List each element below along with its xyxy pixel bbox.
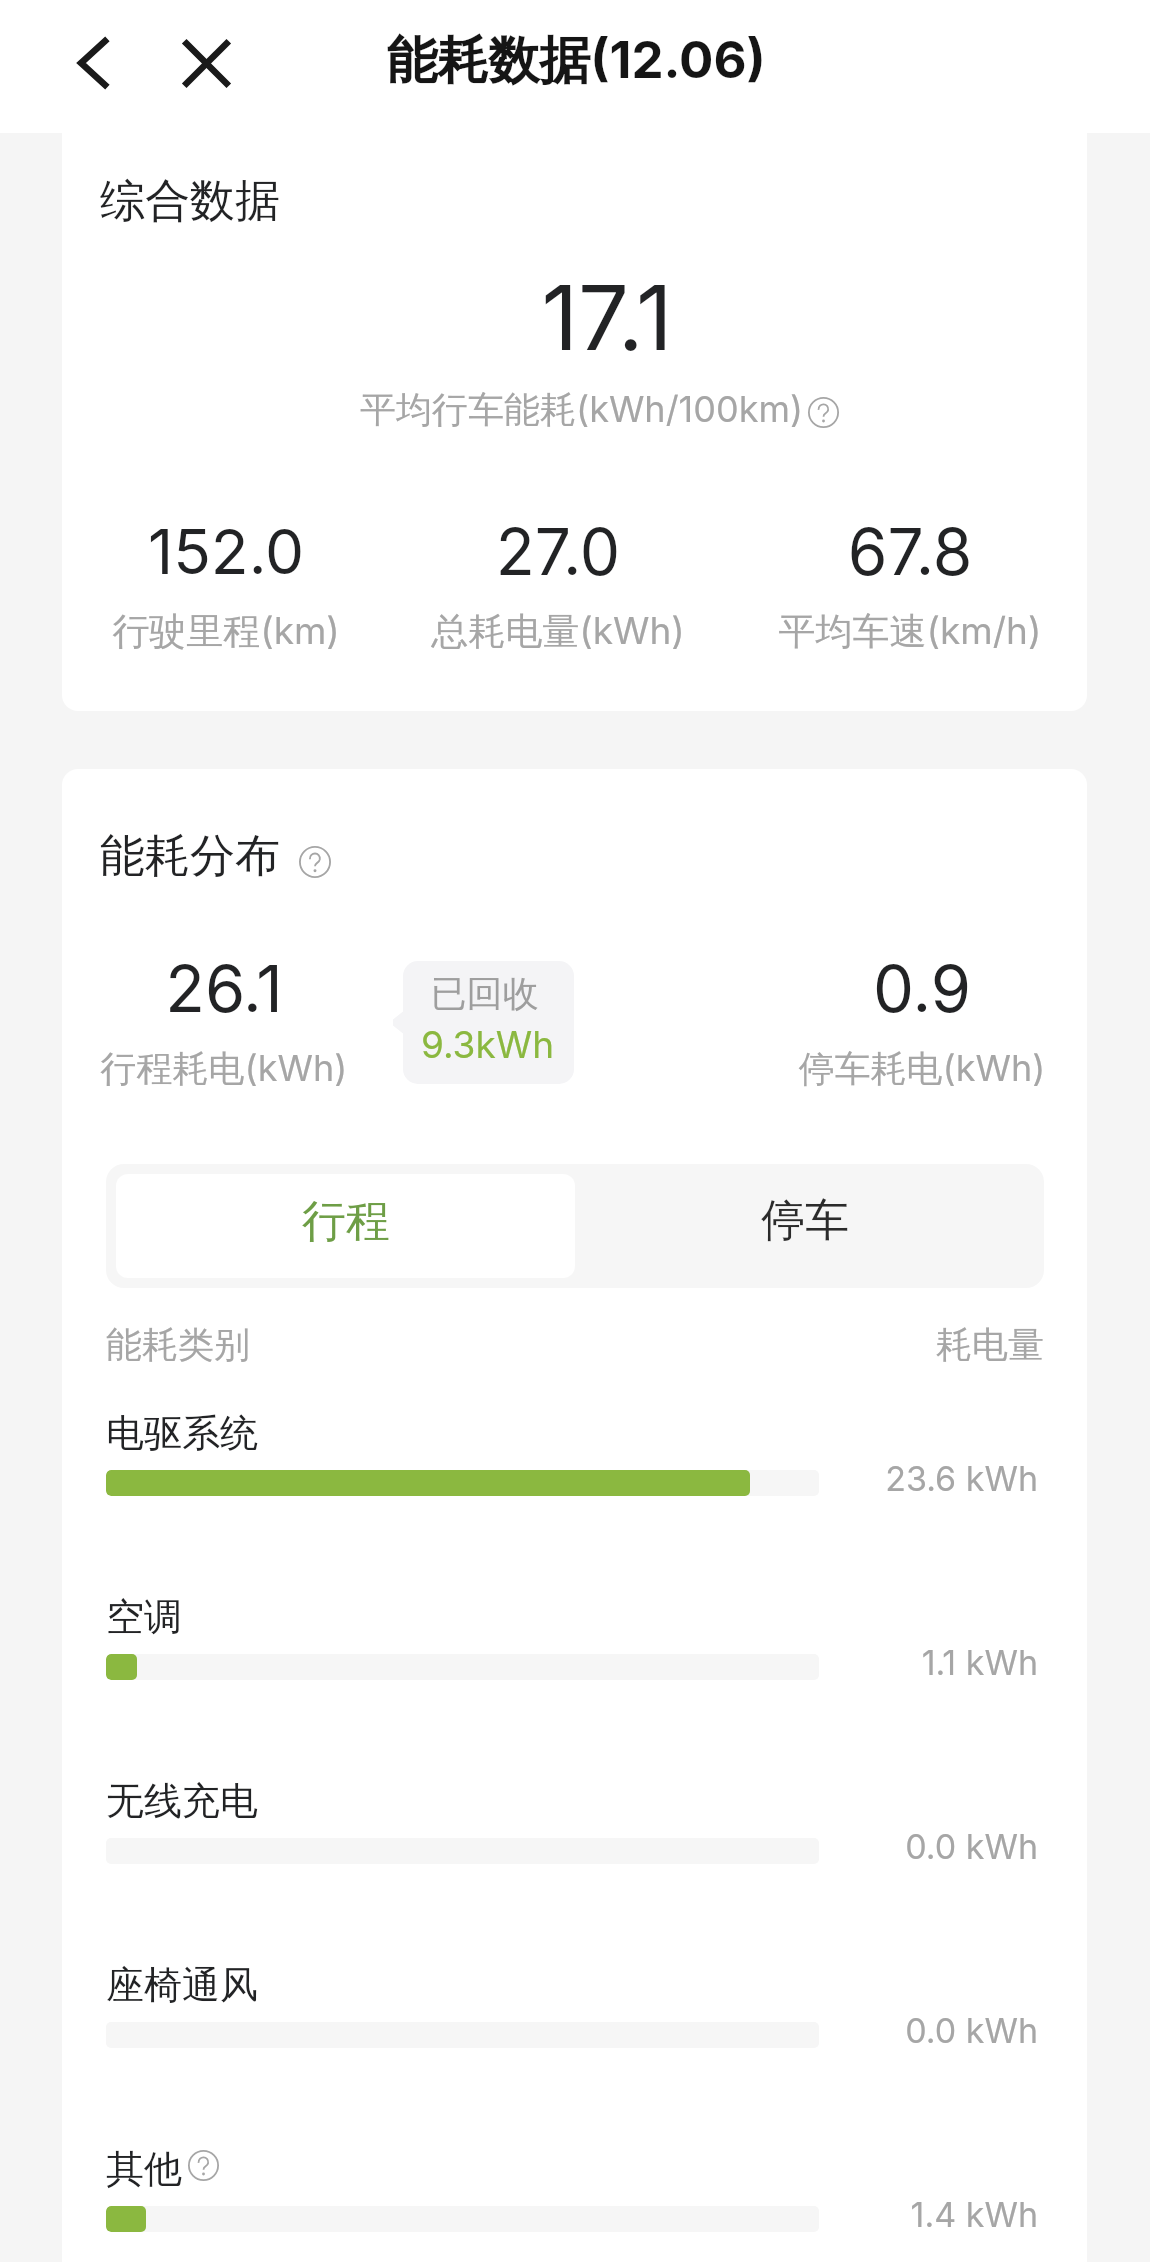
staticText: 无线充电 (106, 1777, 258, 1825)
staticText: 已回收 (403, 971, 570, 1016)
staticText: 电驱系统 (106, 1409, 258, 1457)
staticText: 0.0 kWh (638, 1826, 1038, 1867)
staticText: 能耗分布 (100, 828, 280, 885)
staticText: 其他 (106, 2145, 182, 2193)
staticText: 152.0 (62, 514, 396, 589)
staticText: 耗电量 (644, 1322, 1044, 1367)
staticText: 1.1 kWh (638, 1642, 1038, 1683)
staticText: 9.3kWh (403, 1022, 573, 1067)
staticText: 0.9 (752, 949, 1087, 1028)
button[interactable]: 停车 (575, 1174, 1034, 1278)
staticText: 空调 (106, 1593, 182, 1641)
staticText: 行程耗电(kWh) (62, 1046, 394, 1092)
button[interactable]: More information (299, 846, 331, 878)
staticText: 行驶里程(km) (62, 608, 396, 655)
staticText: 行程 (302, 1194, 390, 1249)
staticText: 座椅通风 (106, 1961, 258, 2009)
button[interactable] (106, 2131, 1044, 2259)
staticText: 停车 (761, 1193, 849, 1248)
button[interactable]: Back (48, 18, 138, 108)
staticText: 综合数据 (100, 173, 280, 230)
button[interactable] (106, 1947, 1044, 2075)
button[interactable]: Close (161, 18, 251, 108)
staticText: 平均行车能耗(kWh/100km) (360, 387, 804, 433)
staticText: 26.1 (62, 949, 394, 1028)
button[interactable] (106, 1763, 1044, 1891)
button[interactable] (106, 1395, 1044, 1523)
staticText: 67.8 (740, 513, 1080, 590)
staticText: 能耗数据(12.06) (276, 29, 876, 94)
staticText: 1.4 kWh (638, 2194, 1038, 2235)
button[interactable] (106, 1579, 1044, 1707)
button[interactable]: More information (188, 2150, 219, 2181)
staticText: 0.0 kWh (638, 2010, 1038, 2051)
staticText: 总耗电量(kWh) (388, 608, 728, 655)
staticText: 17.1 (407, 263, 807, 372)
staticText: 停车耗电(kWh) (752, 1046, 1087, 1092)
button[interactable]: More information (808, 397, 839, 428)
staticText: 23.6 kWh (638, 1458, 1038, 1499)
button[interactable]: 行程 (116, 1174, 575, 1278)
staticText: 平均车速(km/h) (740, 608, 1080, 655)
staticText: 能耗类别 (106, 1322, 250, 1367)
staticText: 27.0 (388, 513, 728, 590)
